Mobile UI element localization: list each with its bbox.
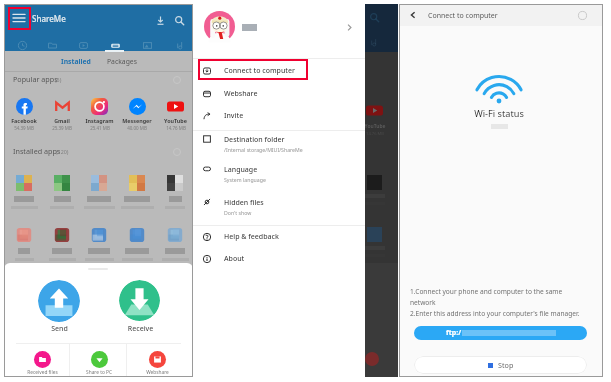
button[interactable]: Help	[575, 8, 589, 22]
staticText: YouTube	[364, 123, 386, 130]
button[interactable]: Webshare	[136, 351, 178, 377]
staticText: Don't show	[224, 209, 252, 216]
button[interactable]: Instagram	[80, 98, 118, 140]
button[interactable]: YouTube	[156, 98, 194, 140]
staticText: System language	[224, 176, 266, 183]
staticText: Packages	[107, 57, 137, 66]
staticText: Stop	[498, 360, 514, 370]
button[interactable]: Stop	[414, 356, 587, 374]
staticText: Popular apps	[13, 74, 58, 84]
button[interactable]: Search	[172, 13, 187, 28]
staticText: Webshare	[224, 89, 258, 99]
staticText: /Internal storage/MIUI/ShareMe	[224, 146, 303, 153]
staticText: Received files	[27, 369, 58, 376]
button[interactable]: Gmail	[43, 98, 81, 140]
staticText: Share to PC	[86, 369, 112, 376]
staticText: ftp:/	[446, 328, 462, 338]
staticText: (5)	[55, 76, 62, 83]
staticText: 2.Enter this address into your computer'…	[410, 309, 595, 318]
button[interactable]: Files	[44, 37, 60, 53]
staticText: Language	[224, 165, 258, 175]
staticText: Installed	[61, 57, 91, 66]
button[interactable]: History	[14, 37, 30, 53]
staticText: Connect to computer	[224, 66, 295, 76]
staticText: 14.76 MB	[166, 125, 186, 131]
staticText: Destination folder	[224, 135, 285, 145]
staticText: Receive	[125, 324, 156, 334]
staticText: Hidden files	[224, 198, 264, 208]
button[interactable]	[119, 280, 160, 321]
button[interactable]: ftp:/	[414, 326, 587, 340]
staticText: Installed apps	[13, 146, 61, 156]
staticText: Facebook	[11, 117, 37, 124]
button[interactable]: Language	[193, 160, 365, 189]
button[interactable]: Connect to computer	[193, 61, 365, 83]
staticText: (120)	[56, 148, 69, 155]
staticText: 25.39 MB	[52, 125, 72, 131]
button[interactable]: Help & feedback	[193, 227, 365, 249]
staticText: Instagram	[85, 117, 114, 124]
button[interactable]: About	[193, 249, 365, 271]
staticText: 1.Connect your phone and computer to the…	[410, 287, 571, 307]
staticText: Help & feedback	[224, 232, 279, 242]
button[interactable]: Received files	[21, 351, 63, 377]
staticText: Invite	[224, 111, 244, 121]
staticText: Webshare	[146, 369, 169, 376]
button[interactable]: Menu	[8, 7, 29, 28]
button[interactable]: Hidden files	[193, 193, 365, 222]
button[interactable]: Downloads	[153, 13, 168, 28]
staticText: 14.76 MB	[364, 131, 386, 137]
staticText: 25.41 MB	[90, 125, 110, 131]
button[interactable]: Back	[406, 8, 420, 22]
staticText: Connect to computer	[428, 11, 498, 21]
button[interactable]	[38, 280, 80, 322]
button[interactable]: Webshare	[193, 84, 365, 106]
button[interactable]: Share to PC	[78, 351, 120, 377]
button[interactable]: Destination folder	[193, 130, 365, 159]
button[interactable]: Photos	[139, 37, 155, 53]
staticText: YouTube	[164, 117, 187, 124]
staticText: About	[224, 254, 245, 264]
button[interactable]	[193, 4, 365, 58]
button[interactable]: Music	[171, 37, 187, 53]
staticText: ShareMe	[32, 13, 66, 24]
staticText: Messenger	[122, 117, 152, 124]
button[interactable]: Facebook	[5, 98, 43, 140]
staticText: Wi-Fi status	[459, 107, 539, 120]
button[interactable]: Messenger	[118, 98, 156, 140]
staticText: 54.39 MB	[14, 125, 34, 131]
staticText: Gmail	[54, 117, 70, 124]
staticText: Send	[44, 324, 75, 334]
button[interactable]: Apps	[107, 37, 123, 53]
button[interactable]: Videos	[75, 37, 91, 53]
staticText: 40.00 MB	[127, 125, 147, 131]
button[interactable]: Invite	[193, 106, 365, 128]
